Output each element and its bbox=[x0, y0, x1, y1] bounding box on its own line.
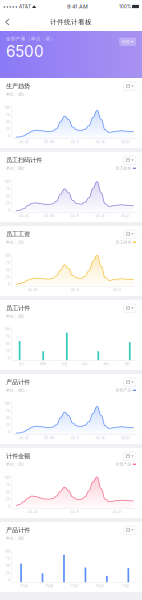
staticText: 员工姓名 bbox=[116, 166, 132, 171]
staticText: 50 bbox=[6, 268, 10, 272]
staticText: 03-16 bbox=[95, 436, 104, 440]
staticText: 75 bbox=[6, 334, 10, 339]
staticText: 100% bbox=[119, 4, 131, 9]
staticText: 03-01 bbox=[19, 140, 28, 144]
staticText: 单位：(双) bbox=[6, 388, 24, 393]
staticText: 生产趋势 bbox=[6, 82, 30, 90]
staticText: 单位：(元) bbox=[6, 240, 24, 245]
staticText: 6500 bbox=[6, 42, 44, 61]
staticText: 日 bbox=[126, 453, 130, 459]
staticText: 03-11 bbox=[70, 510, 78, 514]
staticText: 03-21 bbox=[121, 140, 129, 144]
staticText: 产品A bbox=[20, 584, 28, 588]
button[interactable]: Back bbox=[0, 13, 15, 30]
staticText: 员工扫码计件 bbox=[6, 156, 42, 164]
staticText: 单位：(双) bbox=[6, 166, 24, 171]
staticText: 0 bbox=[8, 134, 10, 138]
button[interactable]: 今日 bbox=[119, 37, 136, 46]
staticText: 75 bbox=[6, 113, 10, 117]
staticText: 单位：(双) bbox=[6, 314, 24, 319]
staticText: 75 bbox=[6, 187, 10, 191]
staticText: 50 bbox=[6, 416, 10, 420]
staticText: 100 bbox=[5, 253, 10, 258]
staticText: 25 bbox=[6, 275, 10, 279]
staticText: 产品D bbox=[95, 584, 104, 588]
staticText: AT&T bbox=[18, 4, 32, 9]
button[interactable]: 日 bbox=[124, 526, 136, 534]
staticText: 03-01 bbox=[19, 436, 28, 440]
staticText: 产品计件 bbox=[6, 526, 30, 534]
staticText: 计件金额 bbox=[6, 452, 30, 460]
staticText: 03-01 bbox=[19, 214, 28, 218]
staticText: 100 bbox=[5, 105, 10, 110]
staticText: 0 bbox=[8, 356, 10, 360]
button[interactable]: 日 bbox=[124, 156, 136, 164]
staticText: 产品计件 bbox=[6, 378, 30, 386]
staticText: 日 bbox=[126, 379, 130, 385]
staticText: 日 bbox=[126, 527, 130, 533]
staticText: 50 bbox=[6, 342, 10, 346]
staticText: 0 bbox=[8, 208, 10, 212]
staticText: 25 bbox=[6, 201, 10, 205]
staticText: 03-11 bbox=[70, 288, 78, 292]
staticText: 03-11 bbox=[70, 436, 78, 440]
staticText: 0 bbox=[8, 504, 10, 508]
button[interactable]: 日 bbox=[124, 452, 136, 460]
staticText: 赵六 bbox=[82, 362, 88, 366]
staticText: 王五 bbox=[61, 362, 67, 366]
staticText: 全部产品 bbox=[116, 388, 132, 393]
staticText: 03-16 bbox=[95, 214, 104, 218]
staticText: 03-21 bbox=[113, 288, 121, 292]
staticText: 03-06 bbox=[44, 140, 54, 144]
staticText: 员工姓名 bbox=[116, 240, 132, 245]
staticText: 0 bbox=[8, 578, 10, 582]
staticText: 03-11 bbox=[70, 214, 78, 218]
staticText: 产品E bbox=[121, 584, 129, 588]
staticText: 03-01 bbox=[28, 510, 37, 514]
staticText: 孙七 bbox=[103, 362, 109, 366]
staticText: 50 bbox=[6, 490, 10, 494]
staticText: 75 bbox=[6, 483, 10, 487]
staticText: 0 bbox=[8, 282, 10, 286]
staticText: 单位：(元) bbox=[6, 462, 24, 467]
staticText: 50 bbox=[6, 194, 10, 198]
staticText: 李四 bbox=[40, 362, 46, 366]
staticText: 50 bbox=[6, 120, 10, 124]
staticText: 计件统计看板 bbox=[50, 18, 92, 26]
staticText: 100 bbox=[5, 549, 10, 553]
staticText: 03-06 bbox=[44, 436, 54, 440]
staticText: 03-21 bbox=[113, 510, 121, 514]
staticText: 9:41 AM bbox=[67, 3, 88, 10]
staticText: 今日 bbox=[122, 39, 130, 44]
button[interactable]: 日 bbox=[124, 230, 136, 238]
staticText: 25 bbox=[6, 349, 10, 353]
button[interactable]: 日 bbox=[124, 82, 136, 90]
staticText: 周八 bbox=[124, 362, 130, 366]
staticText: 25 bbox=[6, 423, 10, 427]
staticText: 03-16 bbox=[95, 140, 104, 144]
staticText: 03-11 bbox=[70, 140, 78, 144]
staticText: 产品C bbox=[70, 584, 79, 588]
staticText: 100 bbox=[5, 179, 10, 184]
staticText: 100 bbox=[5, 475, 10, 480]
staticText: 全部产品 bbox=[116, 462, 132, 467]
staticText: 25 bbox=[6, 571, 10, 575]
button[interactable]: 日 bbox=[124, 378, 136, 386]
staticText: 100 bbox=[5, 327, 10, 331]
staticText: 日 bbox=[126, 83, 130, 89]
staticText: 日 bbox=[126, 231, 130, 237]
staticText: 75 bbox=[6, 409, 10, 413]
staticText: 03-21 bbox=[121, 214, 129, 218]
staticText: 03-06 bbox=[44, 214, 54, 218]
button[interactable]: 日 bbox=[124, 304, 136, 312]
staticText: 03-21 bbox=[121, 436, 129, 440]
staticText: 03-01 bbox=[28, 288, 37, 292]
staticText: 75 bbox=[6, 261, 10, 265]
staticText: 100 bbox=[5, 401, 10, 406]
staticText: 张三 bbox=[19, 362, 25, 366]
staticText: 全部产量（单位：双） bbox=[6, 36, 56, 42]
staticText: 单位：(双) bbox=[6, 92, 24, 97]
staticText: 日 bbox=[126, 157, 130, 163]
staticText: 25 bbox=[6, 127, 10, 131]
staticText: 员工计件 bbox=[6, 304, 30, 312]
